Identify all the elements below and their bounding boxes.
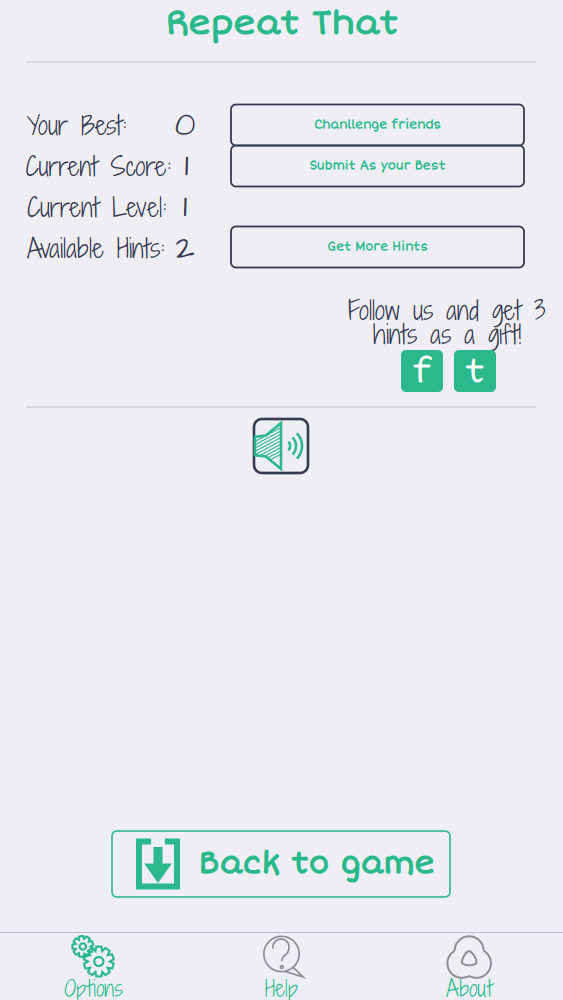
button[interactable]: Submit As your Best	[231, 145, 524, 186]
staticText: Current Level:	[27, 189, 167, 225]
button[interactable]: Back to game	[112, 831, 450, 897]
staticText: Chanllenge friends	[314, 118, 441, 132]
staticText: 2	[175, 225, 194, 271]
staticText: hints as a gift!	[373, 316, 521, 352]
staticText: Follow us and get 3	[348, 292, 546, 328]
staticText: Get More Hints	[327, 240, 428, 254]
staticText: 1	[183, 184, 187, 230]
staticText: t	[465, 349, 485, 393]
button[interactable]: About	[375, 933, 563, 1000]
staticText: Available Hints:	[27, 230, 165, 266]
staticText: Your Best:	[27, 107, 127, 143]
staticText: Current Score:	[25, 148, 171, 184]
staticText: Options	[64, 973, 123, 1000]
staticText: f	[412, 349, 432, 393]
staticText: 1	[184, 143, 188, 189]
button[interactable]: Help	[188, 933, 375, 1000]
button[interactable]: Chanllenge friends	[231, 104, 524, 145]
button[interactable]: Facebook	[401, 350, 443, 392]
button[interactable]: Twitter	[454, 350, 496, 392]
staticText: Repeat That	[165, 3, 398, 44]
button[interactable]: Options	[0, 933, 188, 1000]
staticText: 0	[174, 102, 195, 148]
staticText: Help	[265, 973, 298, 1000]
staticText: Back to game	[198, 845, 434, 883]
button[interactable]: Toggle sound	[254, 419, 308, 473]
staticText: Submit As your Best	[309, 159, 445, 173]
button[interactable]: Get More Hints	[231, 226, 524, 267]
staticText: About	[446, 973, 492, 1000]
